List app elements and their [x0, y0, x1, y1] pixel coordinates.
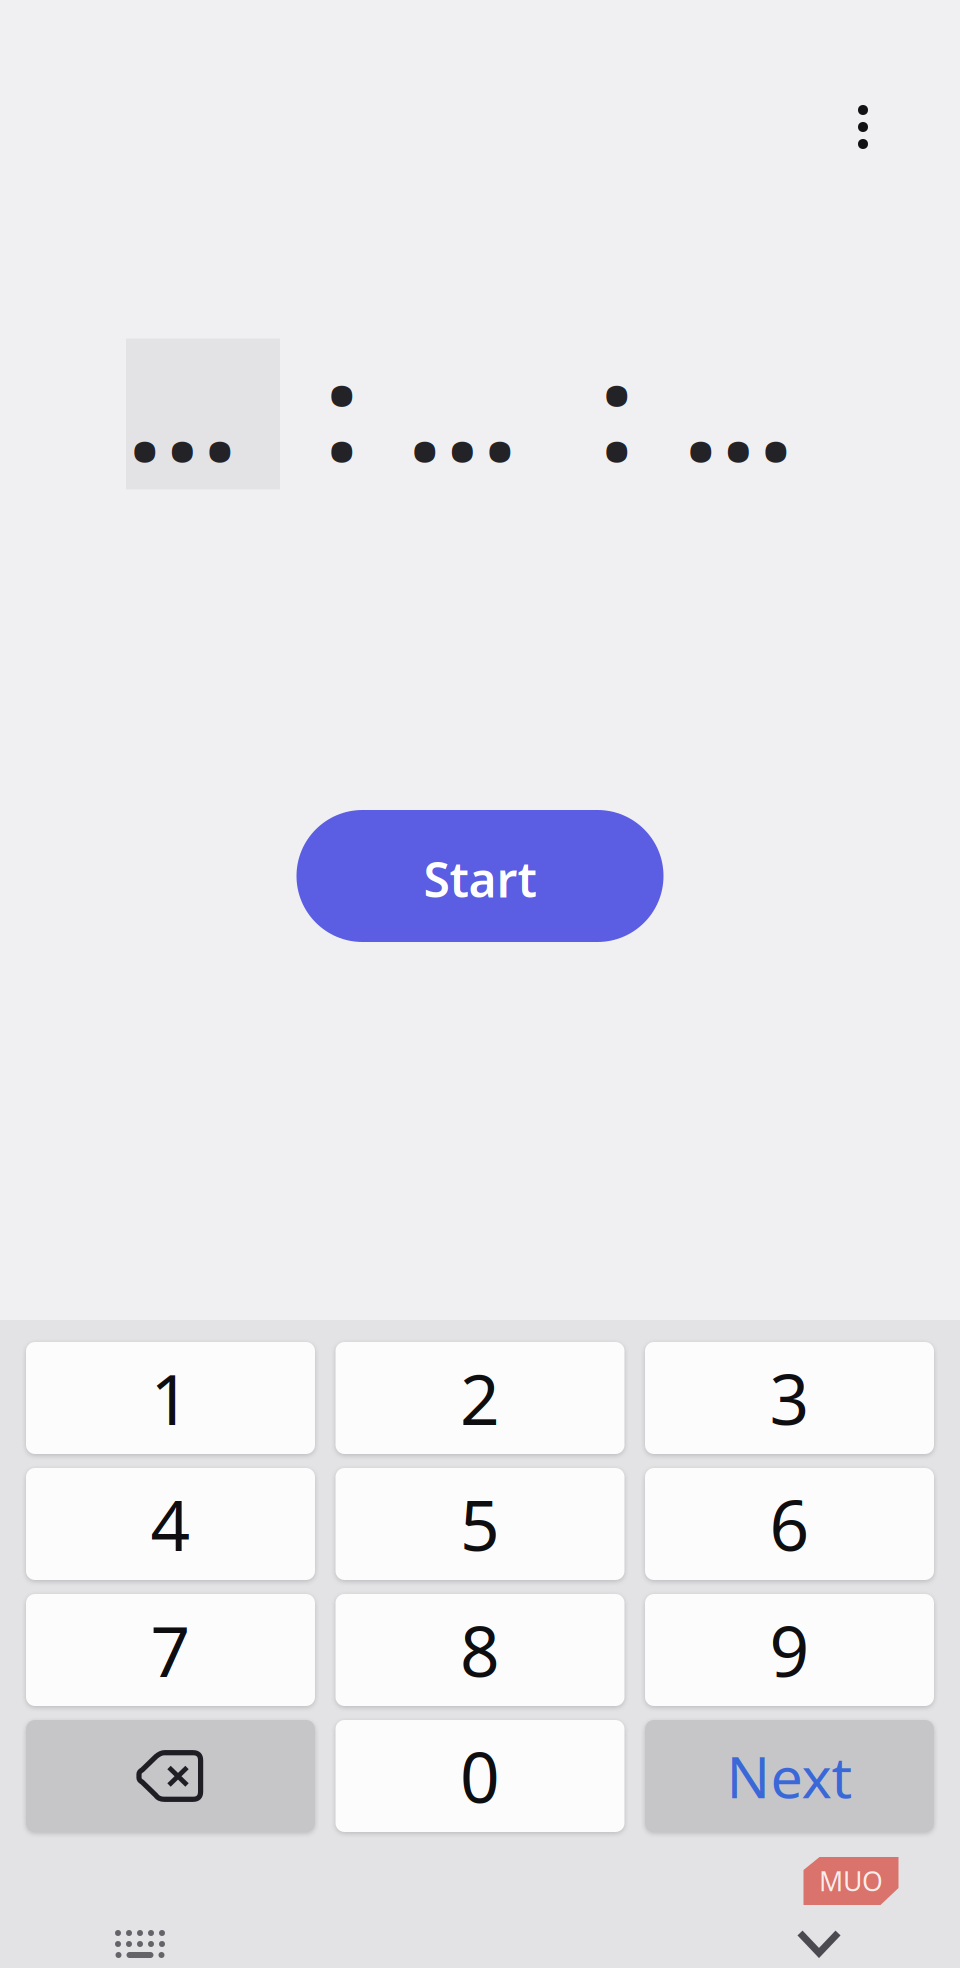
staticText: Start [423, 847, 536, 911]
staticText: 4 [150, 1478, 190, 1570]
button[interactable]: Start [296, 810, 663, 942]
staticText: : [598, 318, 636, 498]
staticText: 9 [769, 1604, 809, 1696]
button[interactable]: Next [645, 1720, 934, 1832]
button[interactable]: 00 [682, 338, 836, 489]
button[interactable]: Switch keyboard [115, 1930, 165, 1958]
staticText: : [323, 318, 361, 498]
staticText: 0 [460, 1730, 500, 1822]
staticText: 8 [460, 1604, 500, 1696]
button[interactable]: 0 [335, 1720, 624, 1832]
staticText: 5 [460, 1478, 500, 1570]
button[interactable]: 5 [335, 1468, 624, 1580]
staticText: 02 [406, 318, 560, 498]
button[interactable]: 3 [645, 1342, 934, 1454]
staticText: Next [726, 1738, 852, 1814]
button[interactable]: Hide keyboard [796, 1929, 842, 1957]
staticText: 1 [150, 1352, 190, 1444]
button[interactable]: 2 [335, 1342, 624, 1454]
staticText: 3 [769, 1352, 809, 1444]
button[interactable]: 9 [645, 1594, 934, 1706]
button[interactable]: Delete [26, 1720, 315, 1832]
staticText: 00 [682, 318, 836, 498]
button[interactable]: 00 [126, 338, 280, 489]
button[interactable]: 6 [645, 1468, 934, 1580]
staticText: 7 [150, 1604, 190, 1696]
staticText: 2 [460, 1352, 500, 1444]
button[interactable]: 4 [26, 1468, 315, 1580]
button[interactable]: 02 [406, 338, 560, 489]
staticText: 6 [769, 1478, 809, 1570]
button[interactable]: 7 [26, 1594, 315, 1706]
staticText: MUO [819, 1863, 883, 1899]
button[interactable]: 8 [335, 1594, 624, 1706]
button[interactable]: 1 [26, 1342, 315, 1454]
staticText: 00 [126, 318, 280, 498]
button[interactable]: More options [833, 105, 893, 149]
